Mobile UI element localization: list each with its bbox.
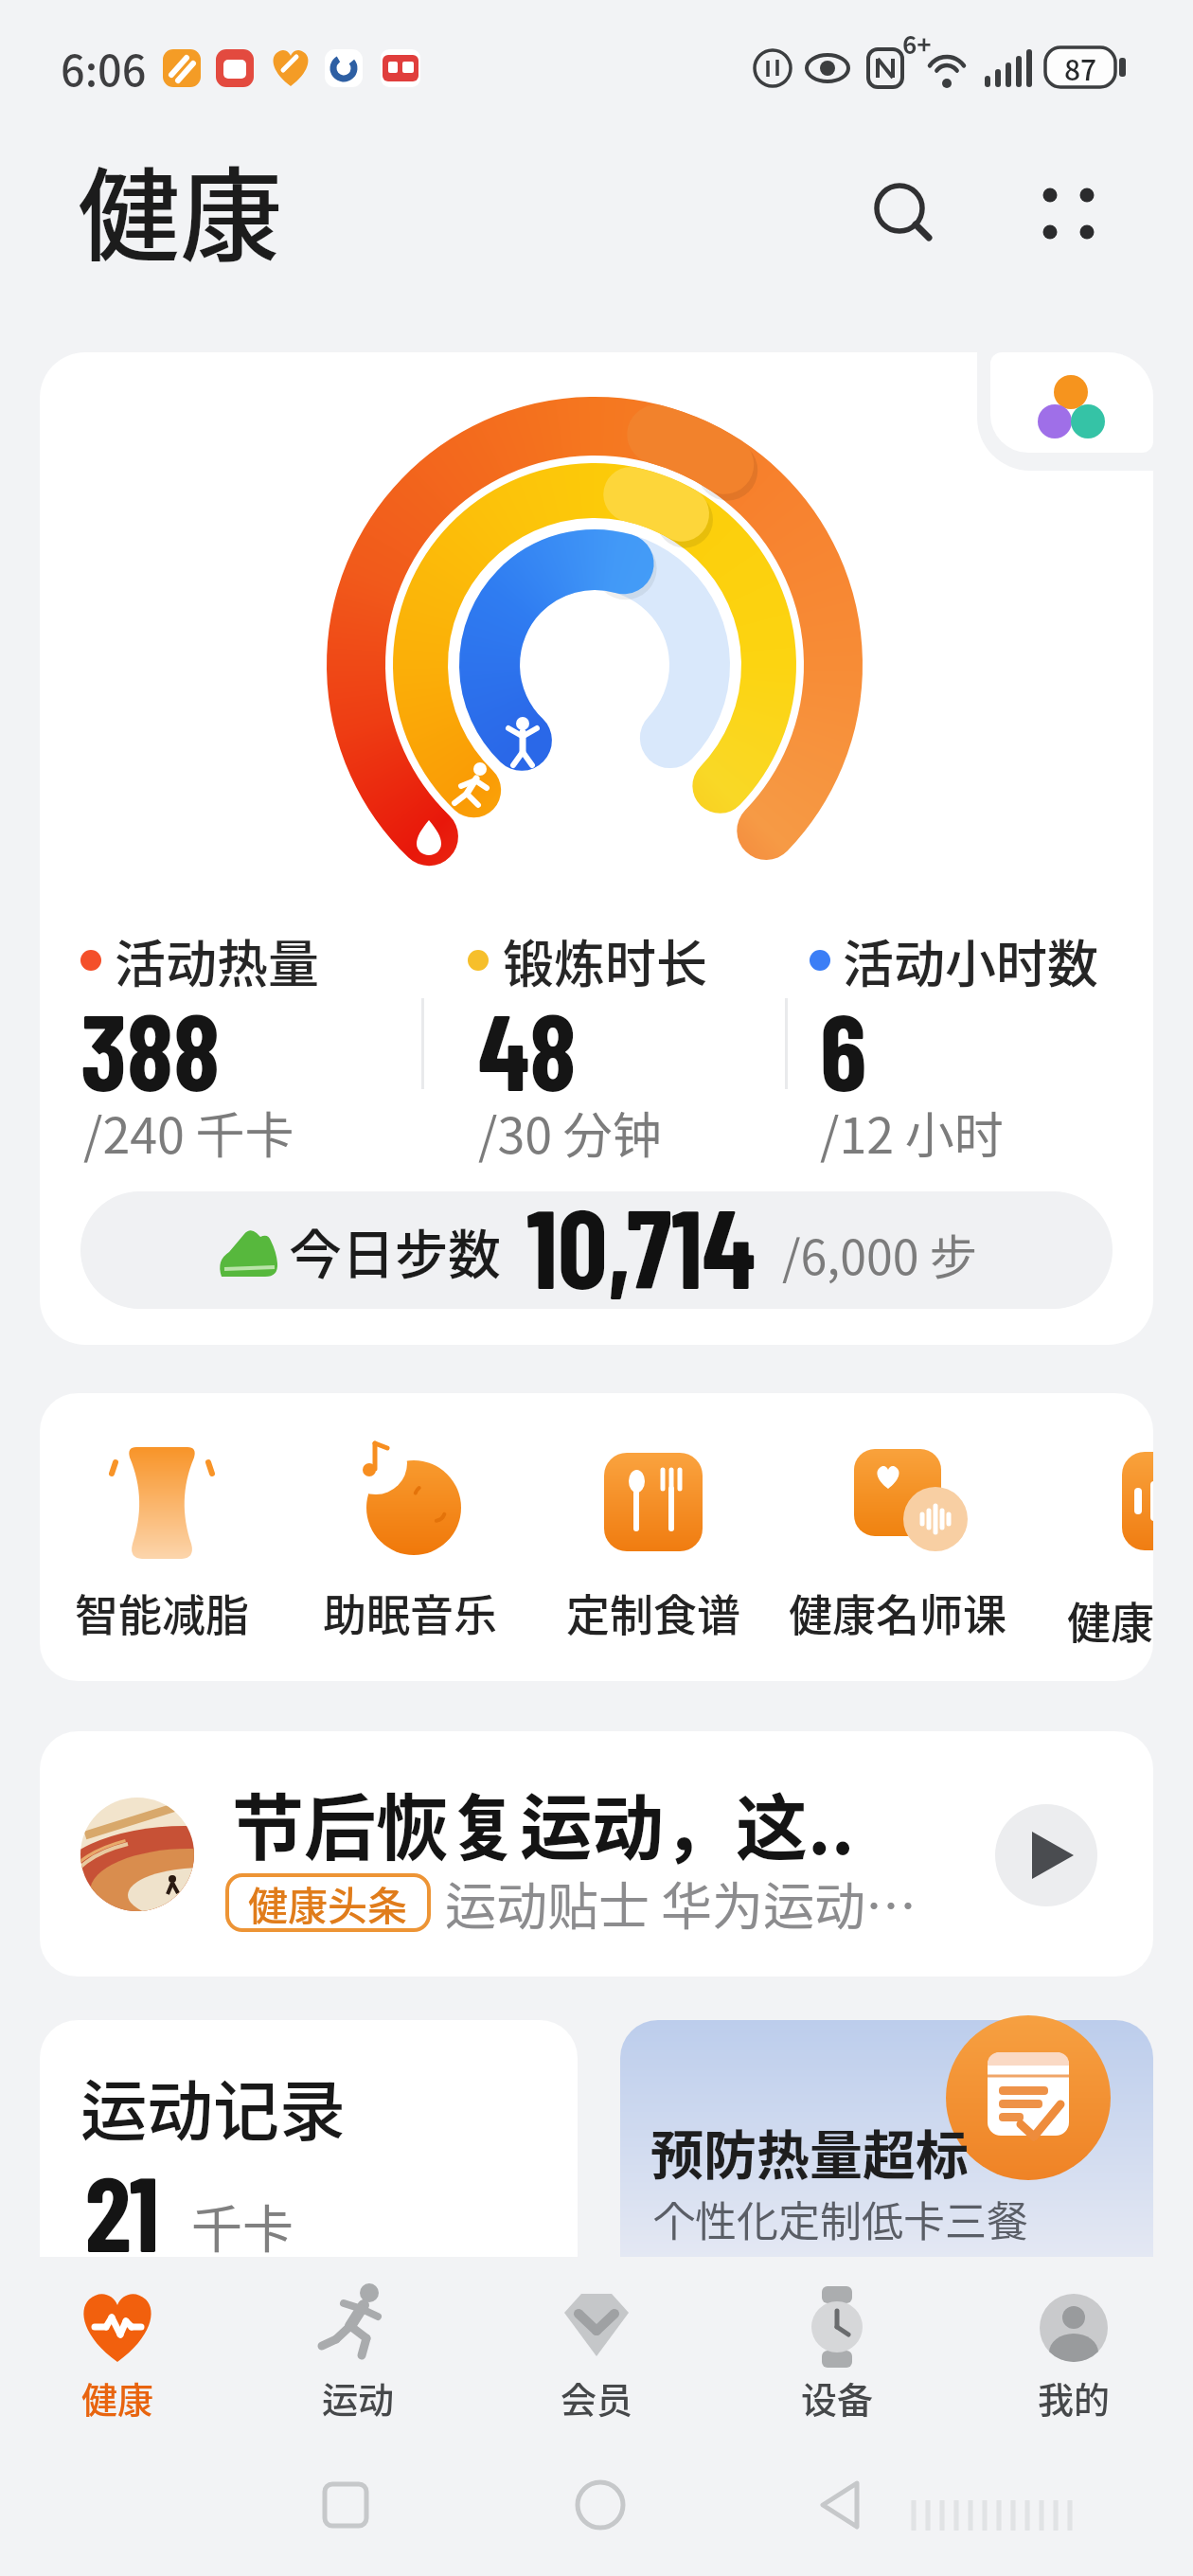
button[interactable]	[1032, 176, 1108, 252]
button[interactable]	[40, 1731, 1153, 1977]
button[interactable]	[994, 1856, 1098, 1960]
button[interactable]	[716, 2273, 954, 2434]
staticText: 节后恢复运动，这..	[232, 1771, 855, 1875]
staticText: 助眠音乐	[323, 1581, 497, 1644]
staticText: /240 千卡	[83, 1097, 294, 1168]
button[interactable]	[477, 2273, 716, 2434]
staticText: 会员	[561, 2371, 633, 2424]
staticText: 千卡	[191, 2189, 294, 2263]
button[interactable]	[40, 2020, 578, 2257]
staticText: 预防热量超标	[650, 2113, 969, 2190]
staticText: /6,000 步	[782, 1220, 977, 1288]
staticText: 388	[80, 985, 221, 1112]
staticText: 健康	[81, 2371, 154, 2424]
staticText: 健康	[78, 134, 283, 282]
staticText: 今日步数	[289, 1212, 501, 1289]
staticText: 健康资讯	[1067, 1588, 1153, 1652]
staticText: 智能减脂	[75, 1581, 249, 1644]
staticText: 健康头条	[248, 1874, 408, 1932]
staticText: 定制食谱	[566, 1581, 740, 1644]
button[interactable]	[57, 1421, 275, 1648]
staticText: 运动贴士 华为运动…	[445, 1866, 917, 1940]
button[interactable]	[303, 2462, 388, 2548]
staticText: 设备	[801, 2371, 874, 2424]
staticText: 我的	[1038, 2371, 1111, 2424]
button[interactable]	[0, 2273, 239, 2434]
staticText: 6+	[902, 26, 932, 62]
staticText: /12 小时	[820, 1097, 1004, 1168]
staticText: 6	[820, 985, 867, 1112]
staticText: 48	[478, 985, 577, 1112]
button[interactable]	[620, 2020, 1153, 2257]
staticText: 21	[85, 2148, 159, 2273]
button[interactable]	[795, 1421, 1013, 1648]
staticText: 健康名师课	[789, 1581, 1006, 1644]
staticText: 运动	[322, 2371, 395, 2424]
staticText: 个性化定制低卡三餐	[653, 2189, 1028, 2249]
button[interactable]	[814, 2462, 899, 2548]
staticText: 87	[1064, 47, 1097, 88]
button[interactable]	[559, 2462, 644, 2548]
button[interactable]	[303, 1421, 521, 1648]
staticText: /30 分钟	[478, 1097, 662, 1168]
button[interactable]	[954, 2273, 1193, 2434]
button[interactable]	[549, 1421, 767, 1648]
button[interactable]	[80, 1191, 1113, 1309]
staticText: 活动热量	[115, 923, 319, 997]
button[interactable]	[239, 2273, 477, 2434]
staticText: 锻炼时长	[503, 923, 707, 997]
staticText: 6:06	[61, 37, 147, 98]
staticText: 运动记录	[80, 2059, 346, 2155]
button[interactable]	[977, 352, 1153, 471]
staticText: 10,714	[526, 1179, 756, 1311]
button[interactable]	[864, 172, 939, 248]
staticText: 活动小时数	[843, 923, 1098, 997]
